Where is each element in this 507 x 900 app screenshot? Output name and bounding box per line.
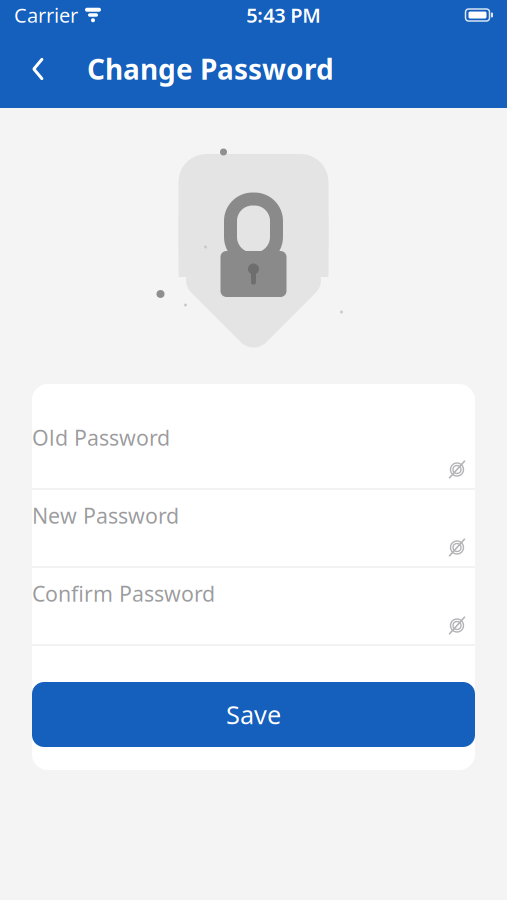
staticText: Save <box>226 698 281 731</box>
staticText: Old Password <box>32 423 170 452</box>
staticText: 5:43 PM <box>246 2 321 28</box>
staticText: Carrier <box>14 2 78 28</box>
staticText: New Password <box>32 501 179 530</box>
button[interactable]: Back <box>16 47 60 91</box>
button[interactable]: Save <box>32 682 475 747</box>
button[interactable]: Show New Password <box>439 531 475 563</box>
staticText: Change Password <box>87 50 334 88</box>
button[interactable]: Show Old Password <box>439 453 475 485</box>
button[interactable]: Show Confirm Password <box>439 609 475 641</box>
staticText: Confirm Password <box>32 579 215 608</box>
